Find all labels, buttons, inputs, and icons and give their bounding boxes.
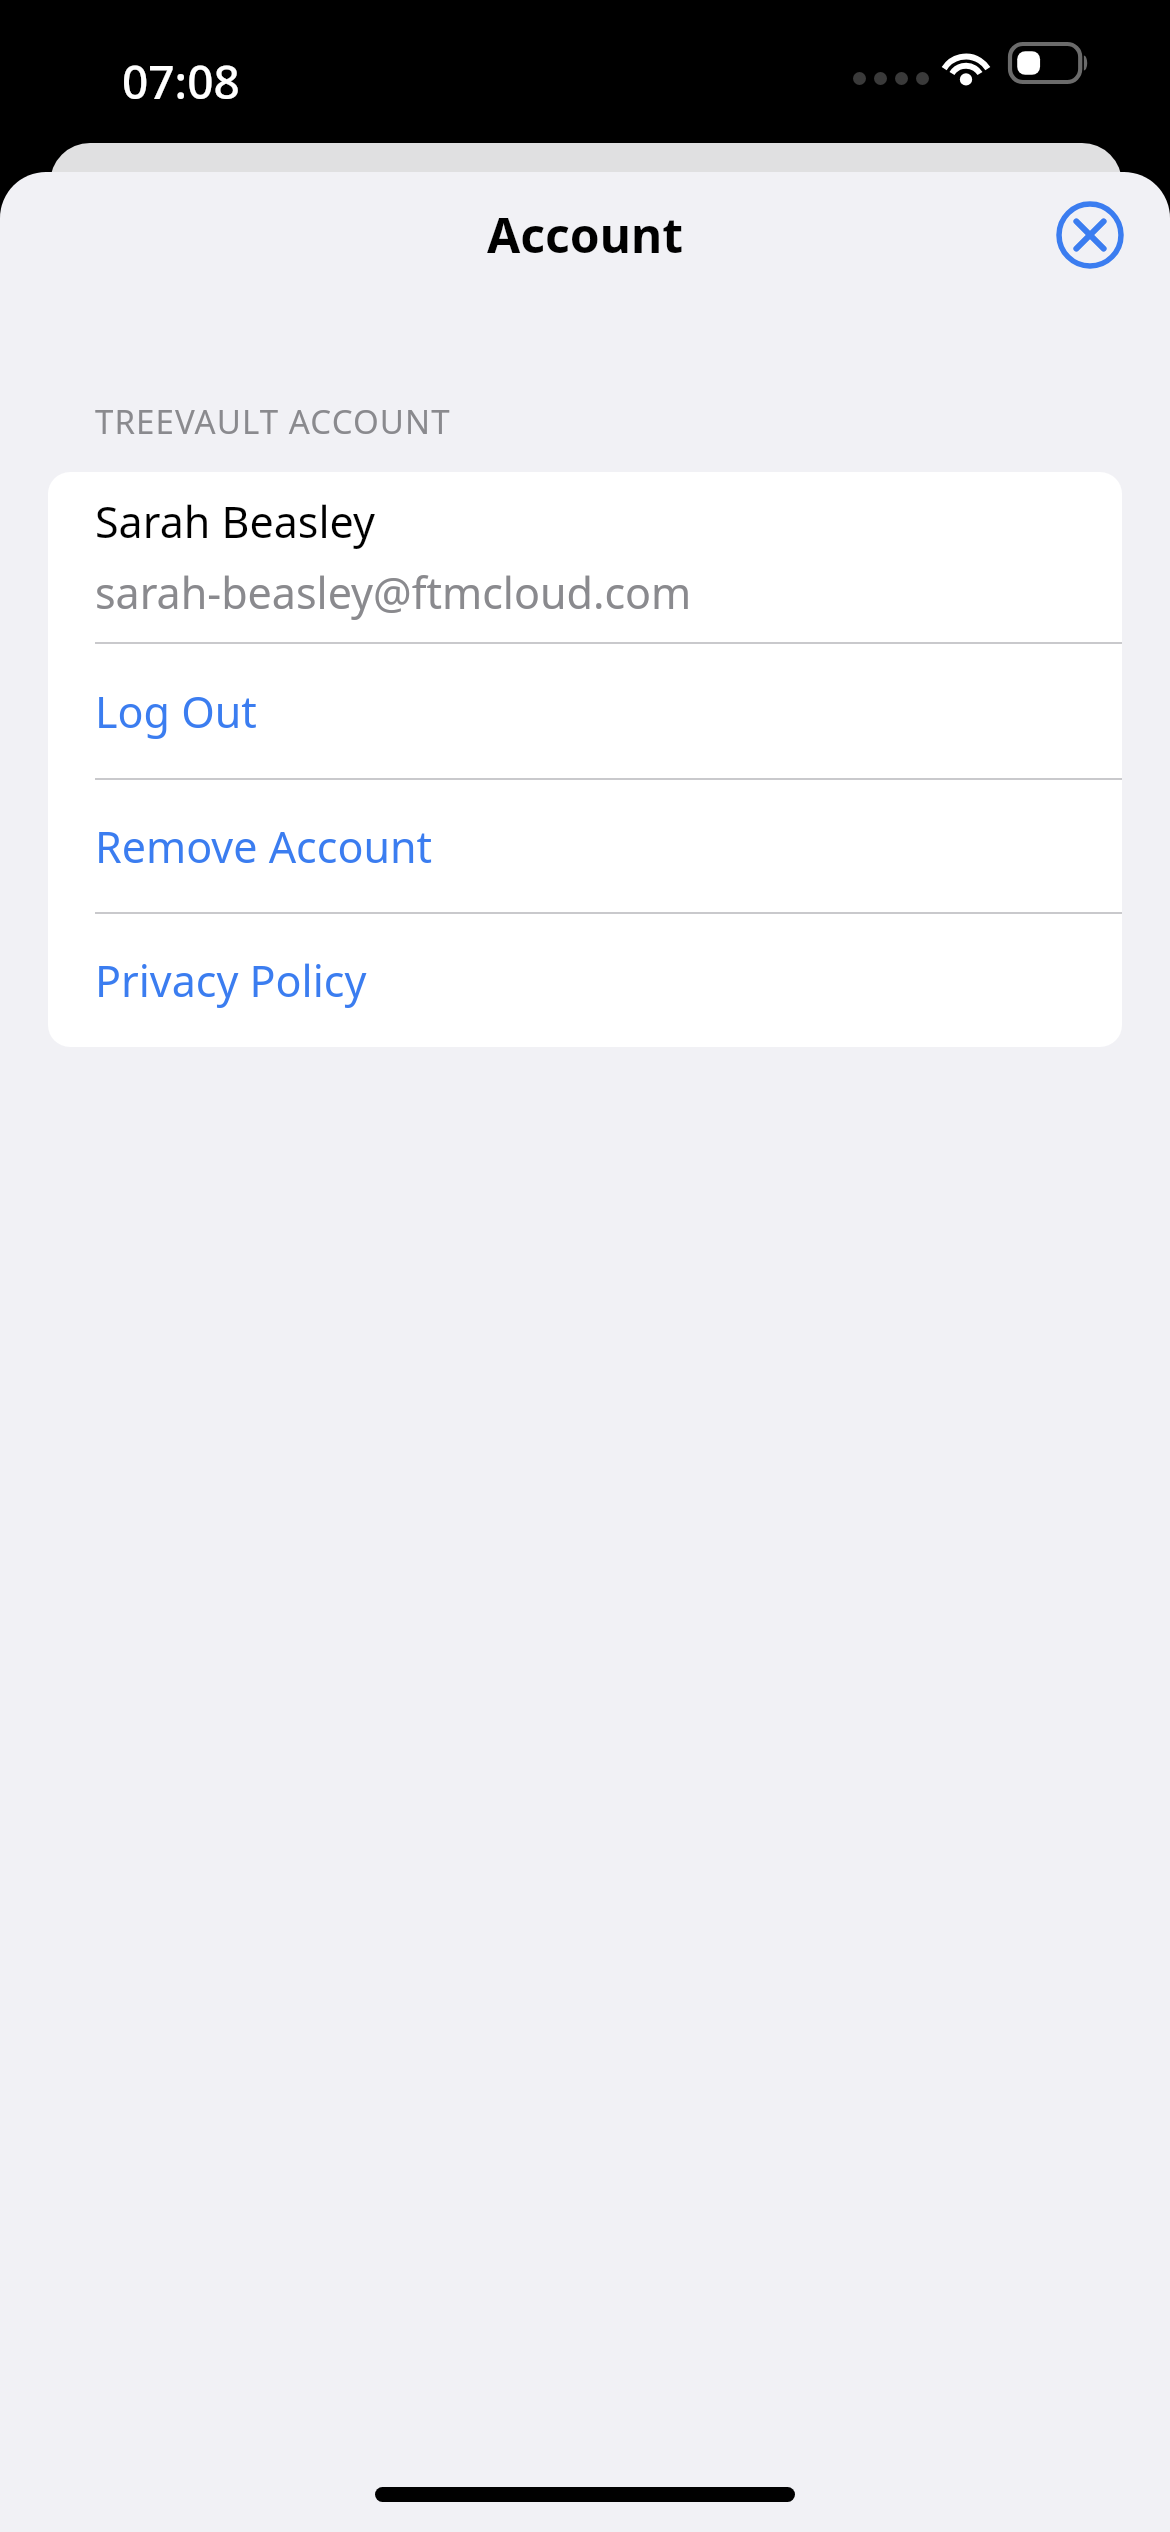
staticText: 07:08 — [122, 50, 240, 113]
staticText: TREEVAULT ACCOUNT — [95, 399, 451, 444]
button[interactable]: Privacy Policy — [48, 914, 1122, 1047]
staticText: sarah-beasley@ftmcloud.com — [95, 563, 692, 622]
staticText: Account — [487, 202, 683, 267]
staticText: Remove Account — [95, 817, 433, 876]
staticText: Privacy Policy — [95, 951, 367, 1010]
staticText: Log Out — [95, 682, 257, 741]
button[interactable]: Log Out — [48, 644, 1122, 778]
staticText: Sarah Beasley — [95, 492, 375, 551]
button[interactable]: Sarah Beasley — [48, 472, 1122, 642]
button[interactable]: Close — [1052, 197, 1128, 273]
button[interactable]: Remove Account — [48, 780, 1122, 912]
